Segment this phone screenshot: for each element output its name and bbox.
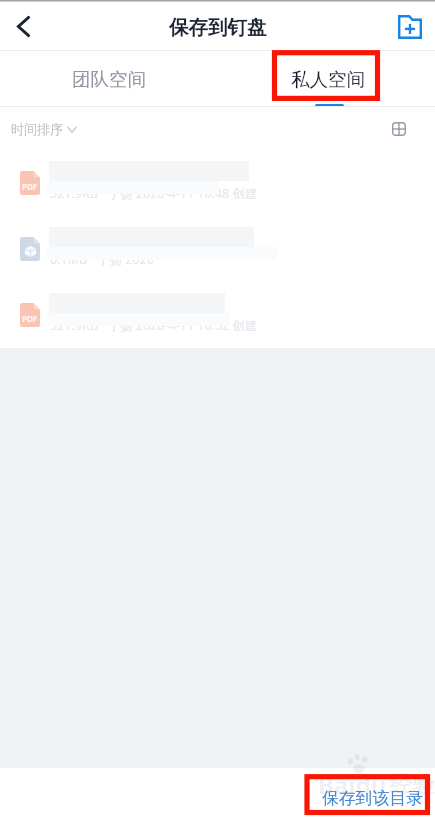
button[interactable]: PDF [0, 150, 435, 216]
staticText: 私人空间 [291, 68, 365, 91]
staticText: PDF [22, 181, 38, 192]
button[interactable]: Back [4, 8, 42, 46]
staticText: 521.9KB · 于扬 2020-4-11 10:52 创建 [50, 317, 258, 334]
staticText: 团队空间 [72, 68, 146, 91]
button[interactable]: PDF [0, 282, 435, 348]
staticText: 经验 [389, 770, 435, 799]
staticText: PDF [22, 313, 38, 324]
button[interactable]: 团队空间 [0, 51, 217, 107]
staticText: Baidu [318, 768, 387, 801]
button[interactable]: 6.1MB · 于扬 2020 [0, 216, 435, 282]
button[interactable]: Grid view [383, 113, 415, 145]
button[interactable]: 保存到该目录 [317, 782, 428, 815]
staticText: 保存到该目录 [322, 788, 423, 809]
staticText: 保存到钉盘 [169, 15, 267, 40]
staticText: 521.9KB · 于扬 2020-4-11 10:48 创建 [50, 185, 258, 202]
staticText: 时间排序 [11, 121, 63, 137]
button[interactable]: 时间排序 [11, 115, 77, 143]
staticText: 6.1MB · 于扬 2020 [50, 251, 154, 268]
button[interactable]: 私人空间 [217, 51, 435, 107]
button[interactable]: New folder [391, 8, 429, 46]
